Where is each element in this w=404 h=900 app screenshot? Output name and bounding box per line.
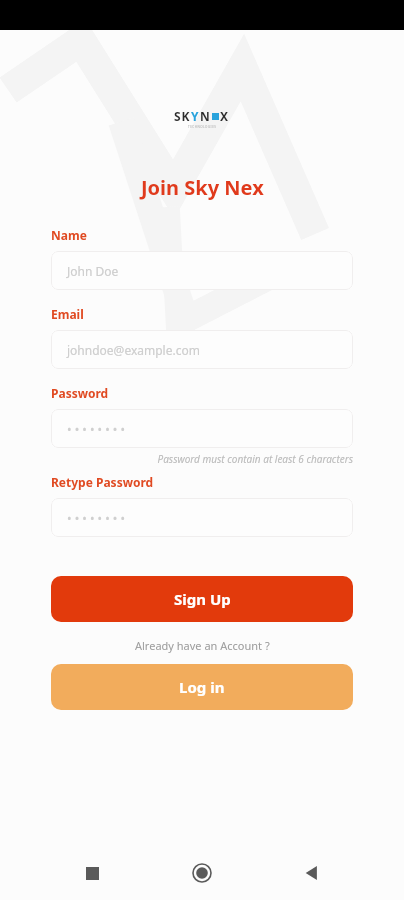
button[interactable]: Back bbox=[292, 853, 332, 893]
button[interactable]: Log in bbox=[51, 664, 353, 710]
staticText: • • • • • • • • bbox=[67, 510, 125, 526]
staticText: John Doe bbox=[67, 263, 119, 279]
staticText: Password bbox=[51, 385, 109, 401]
button[interactable]: • • • • • • • • bbox=[51, 498, 353, 537]
staticText: Log in bbox=[179, 677, 225, 697]
staticText: Sign Up bbox=[174, 589, 231, 609]
button[interactable]: johndoe@example.com bbox=[51, 330, 353, 369]
staticText: Password must contain at least 6 charact… bbox=[51, 452, 353, 466]
staticText: johndoe@example.com bbox=[67, 342, 200, 358]
staticText: SK bbox=[174, 108, 191, 124]
staticText: Name bbox=[51, 227, 87, 243]
staticText: Email bbox=[51, 306, 84, 322]
staticText: N bbox=[200, 108, 211, 124]
button[interactable]: Recent apps bbox=[72, 853, 112, 893]
staticText: • • • • • • • • bbox=[67, 421, 125, 437]
staticText: Already have an Account ? bbox=[135, 638, 270, 653]
button[interactable]: Sign Up bbox=[51, 576, 353, 622]
button[interactable]: Home bbox=[182, 853, 222, 893]
staticText: TECHNOLOGIES bbox=[188, 125, 217, 129]
staticText: X bbox=[220, 108, 230, 124]
staticText: Y bbox=[191, 108, 200, 124]
staticText: Join Sky Nex bbox=[141, 174, 264, 201]
button[interactable]: John Doe bbox=[51, 251, 353, 290]
staticText: Retype Password bbox=[51, 474, 154, 490]
button[interactable]: • • • • • • • • bbox=[51, 409, 353, 448]
